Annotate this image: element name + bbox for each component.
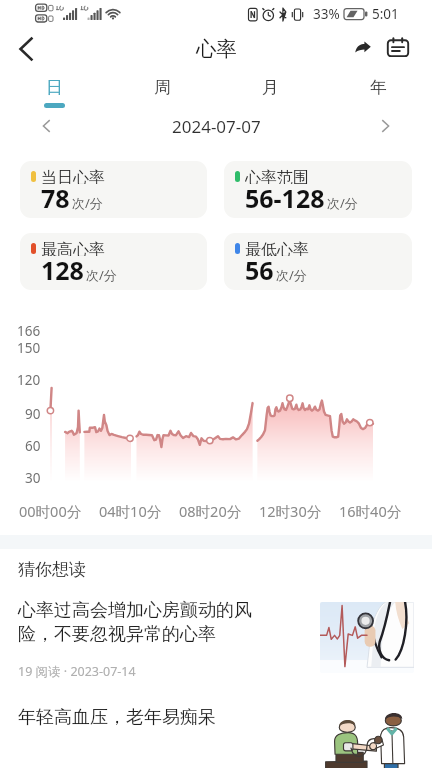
button[interactable]: 最低心率 <box>224 233 412 290</box>
staticText: 心率范围 <box>245 168 309 184</box>
button[interactable]: Records <box>383 32 413 62</box>
button[interactable]: 周 <box>108 70 216 112</box>
staticText: 90 <box>25 405 41 423</box>
staticText: 16时40分 <box>339 501 402 521</box>
staticText: 日 <box>46 77 63 98</box>
staticText: 年轻高血压，老年易痴呆 <box>18 706 216 729</box>
button[interactable]: Next day <box>376 116 396 136</box>
staticText: 120 <box>17 371 41 389</box>
staticText: 2024-07-07 <box>172 115 261 138</box>
staticText: 最高心率 <box>41 240 105 256</box>
button[interactable]: Previous day <box>36 116 56 136</box>
button[interactable]: 月 <box>216 70 324 112</box>
staticText: 08时20分 <box>179 501 242 521</box>
button[interactable]: 心率范围 <box>224 161 412 218</box>
staticText: 猜你想读 <box>18 559 86 580</box>
staticText: 心率过高会增加心房颤动的风 险，不要忽视异常的心率 <box>18 599 252 645</box>
button[interactable]: 当日心率 <box>20 161 207 218</box>
staticText: 56-128 <box>245 181 325 215</box>
staticText: 5:01 <box>372 5 399 23</box>
button[interactable]: Back <box>8 31 44 67</box>
staticText: 128 <box>41 253 84 287</box>
staticText: 00时00分 <box>19 501 82 521</box>
button[interactable]: 年轻高血压，老年易痴呆 <box>0 706 432 768</box>
staticText: 19 阅读 · 2023-07-14 <box>18 663 136 680</box>
staticText: 心率 <box>196 36 237 62</box>
button[interactable]: 年 <box>324 70 432 112</box>
staticText: 周 <box>154 77 171 98</box>
staticText: 166 <box>17 322 41 340</box>
button[interactable]: 日 <box>0 70 108 112</box>
staticText: 最低心率 <box>245 240 309 256</box>
button[interactable]: 心率过高会增加心房颤动的风 险，不要忽视异常的心率 <box>0 599 432 680</box>
staticText: 04时10分 <box>99 501 162 521</box>
staticText: 当日心率 <box>41 168 105 184</box>
staticText: 月 <box>262 77 279 98</box>
staticText: 30 <box>25 469 41 487</box>
staticText: 56 <box>245 253 274 287</box>
staticText: 12时30分 <box>259 501 322 521</box>
button[interactable]: Share <box>348 32 378 62</box>
button[interactable]: 最高心率 <box>20 233 207 290</box>
staticText: 33% <box>313 5 340 23</box>
staticText: 次/分 <box>72 194 103 212</box>
staticText: 78 <box>41 181 70 215</box>
staticText: 年 <box>370 77 387 98</box>
staticText: 60 <box>25 437 41 455</box>
staticText: 次/分 <box>327 194 358 212</box>
staticText: 次/分 <box>276 266 307 284</box>
staticText: 150 <box>17 339 41 357</box>
staticText: 次/分 <box>86 266 117 284</box>
